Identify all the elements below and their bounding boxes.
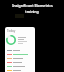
button[interactable]	[5, 48, 35, 52]
button[interactable]	[5, 52, 35, 56]
button[interactable]	[5, 56, 35, 60]
button[interactable]	[5, 68, 35, 72]
button[interactable]	[5, 60, 35, 64]
staticText: Today	[7, 29, 16, 33]
button[interactable]	[5, 64, 35, 68]
staticText: training	[25, 9, 39, 14]
staticText: Insignificant Biometrics	[12, 3, 53, 8]
